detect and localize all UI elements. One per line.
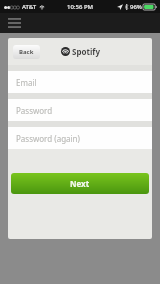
staticText: Next xyxy=(70,178,90,189)
button[interactable]: Menu xyxy=(5,15,23,31)
staticText: AT&T xyxy=(22,3,37,11)
staticText: Email xyxy=(16,77,37,88)
button[interactable]: Email xyxy=(8,71,152,93)
button[interactable]: Next xyxy=(11,173,149,194)
button[interactable]: Password (again) xyxy=(8,127,152,149)
staticText: Back xyxy=(19,48,34,56)
staticText: 96% xyxy=(130,3,142,11)
staticText: Password (again) xyxy=(16,133,80,144)
button[interactable]: Back xyxy=(13,45,40,59)
staticText: 10:56 PM xyxy=(67,3,94,11)
button[interactable]: Password xyxy=(8,99,152,121)
staticText: Spotify xyxy=(72,46,100,57)
staticText: Password xyxy=(16,105,53,116)
